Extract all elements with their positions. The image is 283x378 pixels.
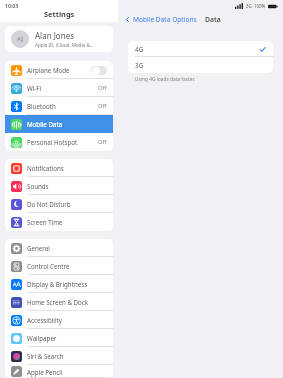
staticText: Personal Hotspot bbox=[27, 138, 98, 146]
staticText: Wi-Fi bbox=[27, 84, 98, 92]
button[interactable]: Screen Time bbox=[5, 213, 113, 231]
button[interactable]: Home Screen & Dock bbox=[5, 293, 113, 311]
staticText: Display & Brightness bbox=[27, 280, 107, 288]
button[interactable]: Accessibility bbox=[5, 311, 113, 329]
staticText: Using 4G loads data faster. bbox=[135, 76, 195, 83]
staticText: 100% bbox=[254, 3, 266, 9]
button[interactable]: Control Centre bbox=[5, 257, 113, 275]
button[interactable]: Siri & Search bbox=[5, 347, 113, 365]
staticText: Notifications bbox=[27, 164, 107, 172]
staticText: Data bbox=[205, 15, 221, 24]
staticText: 3G bbox=[135, 61, 144, 70]
staticText: Airplane Mode bbox=[27, 66, 91, 74]
staticText: Mobile Data Options bbox=[133, 15, 197, 24]
staticText: Alan Jones bbox=[35, 30, 74, 41]
button[interactable]: 3G bbox=[128, 57, 273, 73]
staticText: AJ bbox=[17, 35, 23, 43]
staticText: Accessibility bbox=[27, 316, 107, 324]
button[interactable]: Airplane Mode toggle bbox=[91, 66, 107, 75]
staticText: General bbox=[27, 244, 107, 252]
staticText: Bluetooth bbox=[27, 102, 98, 110]
button[interactable]: AJ bbox=[5, 26, 113, 52]
button[interactable]: Wallpaper bbox=[5, 329, 113, 347]
staticText: Sounds bbox=[27, 182, 107, 190]
button[interactable]: Sounds bbox=[5, 177, 113, 195]
button[interactable]: Notifications bbox=[5, 159, 113, 177]
button[interactable]: Do Not Disturb bbox=[5, 195, 113, 213]
staticText: Off bbox=[98, 138, 107, 146]
button[interactable]: Wi-Fi bbox=[5, 79, 113, 97]
button[interactable]: Personal Hotspot bbox=[5, 133, 113, 151]
button[interactable]: General bbox=[5, 239, 113, 257]
button[interactable]: Mobile Data bbox=[5, 115, 113, 133]
button[interactable]: Airplane Mode bbox=[5, 61, 113, 79]
staticText: Home Screen & Dock bbox=[27, 298, 107, 306]
staticText: Off bbox=[98, 102, 107, 110]
button[interactable]: 4G bbox=[128, 41, 273, 57]
staticText: Siri & Search bbox=[27, 352, 107, 360]
button[interactable]: Back bbox=[123, 13, 198, 26]
button[interactable]: Display & Brightness bbox=[5, 275, 113, 293]
staticText: Off bbox=[98, 84, 107, 92]
staticText: Wallpaper bbox=[27, 334, 107, 342]
other: Back bbox=[124, 16, 131, 23]
staticText: Mobile Data bbox=[27, 120, 107, 128]
staticText: 3G bbox=[246, 3, 252, 9]
staticText: Do Not Disturb bbox=[27, 200, 107, 208]
button[interactable]: Bluetooth bbox=[5, 97, 113, 115]
button[interactable]: Apple Pencil bbox=[5, 365, 113, 378]
staticText: Settings bbox=[44, 9, 75, 19]
staticText: 10:03 bbox=[5, 2, 19, 9]
staticText: Control Centre bbox=[27, 262, 107, 270]
staticText: Apple Pencil bbox=[27, 368, 107, 376]
staticText: 4G bbox=[135, 45, 259, 54]
staticText: Screen Time bbox=[27, 218, 107, 226]
staticText: Apple ID, iCloud, Media &… bbox=[35, 42, 94, 48]
